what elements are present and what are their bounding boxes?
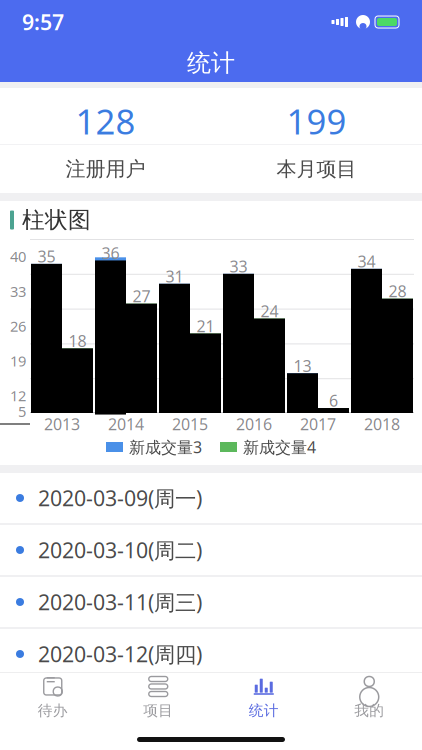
staticText: 9:57 [22, 8, 64, 36]
staticText: 2020-03-11(周三) [38, 588, 202, 616]
staticText: 18 [68, 330, 86, 351]
staticText: 2015 [172, 413, 208, 435]
staticText: 31 [165, 266, 183, 287]
button[interactable]: 统计 [211, 672, 316, 722]
button[interactable]: 待办 [0, 672, 105, 722]
button[interactable]: 128 [0, 98, 211, 193]
staticText: 33 [229, 256, 247, 277]
button[interactable]: 2020-03-12(周四) [0, 629, 422, 679]
button[interactable]: 199 [211, 98, 422, 193]
staticText: 12 [10, 386, 26, 405]
staticText: 34 [357, 251, 375, 272]
staticText: 36 [101, 242, 119, 263]
staticText: 统计 [249, 701, 279, 719]
staticText: 27 [132, 285, 150, 307]
staticText: 2014 [108, 413, 144, 435]
staticText: 本月项目 [276, 157, 356, 181]
button[interactable]: 项目 [105, 672, 211, 722]
staticText: 2020-03-12(周四) [38, 640, 202, 668]
staticText: 35 [37, 246, 55, 267]
button[interactable]: 2020-03-09(周一) [0, 473, 422, 523]
staticText: 28 [388, 280, 406, 302]
staticText: 统计 [187, 48, 235, 78]
staticText: 2016 [236, 413, 272, 435]
staticText: 6 [329, 390, 338, 411]
staticText: 柱状图 [22, 206, 91, 234]
staticText: 2017 [300, 413, 336, 435]
staticText: 33 [10, 281, 26, 301]
button[interactable]: 2020-03-10(周二) [0, 525, 422, 575]
staticText: 项目 [143, 701, 173, 719]
staticText: 26 [10, 316, 26, 336]
staticText: 2020-03-10(周二) [38, 536, 202, 564]
staticText: 新成交量4 [243, 436, 316, 458]
staticText: 新成交量3 [129, 436, 202, 458]
staticText: 2020-03-09(周一) [38, 484, 202, 512]
staticText: 13 [293, 355, 311, 376]
staticText: 2018 [364, 413, 400, 435]
staticText: 128 [75, 98, 135, 144]
button[interactable]: 2020-03-11(周三) [0, 577, 422, 627]
staticText: 2013 [44, 413, 80, 435]
staticText: 注册用户 [65, 157, 145, 181]
staticText: 199 [286, 98, 346, 144]
staticText: 19 [10, 351, 26, 371]
staticText: 5 [18, 401, 26, 421]
staticText: 我的 [354, 701, 384, 719]
staticText: 24 [260, 300, 278, 322]
staticText: 21 [196, 315, 214, 336]
button[interactable]: 我的 [316, 672, 422, 722]
staticText: 待办 [38, 701, 68, 719]
staticText: 40 [10, 247, 26, 266]
